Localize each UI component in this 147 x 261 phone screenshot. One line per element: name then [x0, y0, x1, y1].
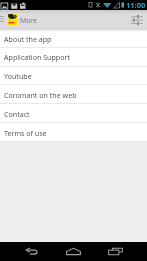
button[interactable]: Contact: [0, 104, 147, 123]
button[interactable]: About the app: [0, 29, 147, 48]
staticText: Coromant on the web: [4, 90, 77, 100]
button[interactable]: Navigate up: [0, 10, 37, 28]
staticText: Application Support: [4, 52, 70, 62]
staticText: More: [20, 16, 37, 25]
staticText: Youtube: [4, 71, 32, 81]
staticText: Contact: [4, 109, 30, 119]
button[interactable]: Terms of use: [0, 123, 147, 142]
button[interactable]: Home: [66, 248, 81, 255]
button[interactable]: Application Support: [0, 47, 147, 66]
staticText: Terms of use: [4, 128, 47, 138]
staticText: About the app: [4, 34, 52, 44]
button[interactable]: Settings: [127, 10, 147, 28]
button[interactable]: Back: [25, 248, 38, 255]
button[interactable]: Youtube: [0, 66, 147, 85]
button[interactable]: Recent apps: [108, 248, 123, 255]
button[interactable]: Coromant on the web: [0, 85, 147, 104]
staticText: 11:00: [126, 0, 146, 10]
